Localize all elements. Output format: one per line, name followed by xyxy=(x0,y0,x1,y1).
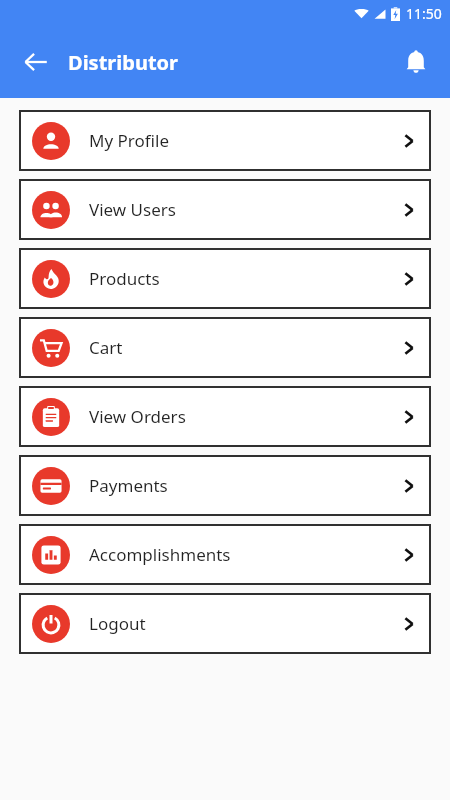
staticText: Logout xyxy=(89,612,146,635)
staticText: Products xyxy=(89,267,160,290)
staticText: Distributor xyxy=(68,49,179,76)
staticText: 11:50 xyxy=(406,4,442,23)
staticText: Accomplishments xyxy=(89,543,231,566)
button[interactable]: Payments xyxy=(19,455,431,516)
button[interactable]: Accomplishments xyxy=(19,524,431,585)
button[interactable]: Cart xyxy=(19,317,431,378)
staticText: My Profile xyxy=(89,129,169,152)
button[interactable]: Notifications xyxy=(396,42,436,82)
button[interactable]: Logout xyxy=(19,593,431,654)
button[interactable]: My Profile xyxy=(19,110,431,171)
staticText: Payments xyxy=(89,474,168,497)
button[interactable]: Back xyxy=(18,44,54,80)
staticText: View Users xyxy=(89,198,176,221)
button[interactable]: View Orders xyxy=(19,386,431,447)
staticText: Cart xyxy=(89,336,123,359)
button[interactable]: Products xyxy=(19,248,431,309)
staticText: View Orders xyxy=(89,405,186,428)
button[interactable]: View Users xyxy=(19,179,431,240)
